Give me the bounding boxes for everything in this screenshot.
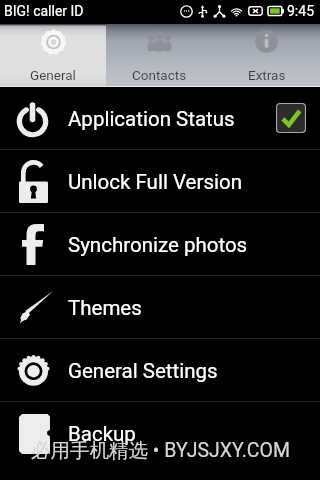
button[interactable]: Contacts	[106, 24, 213, 87]
button[interactable]: Synchronize photos	[0, 213, 320, 275]
staticText: Unlock Full Version	[68, 170, 320, 194]
button[interactable]: Extras	[213, 24, 320, 87]
staticText: Themes	[68, 296, 320, 320]
staticText: Synchronize photos	[68, 233, 320, 257]
button[interactable]: Backup	[0, 402, 320, 464]
staticText: BIG! caller ID	[4, 3, 84, 19]
staticText: Extras	[248, 67, 286, 83]
staticText: General Settings	[68, 359, 320, 383]
staticText: Application Status	[68, 107, 276, 131]
staticText: General	[30, 67, 76, 83]
staticText: 9:45	[287, 3, 314, 19]
button[interactable]: General Settings	[0, 339, 320, 401]
button[interactable]: Application Status	[0, 87, 320, 149]
button[interactable]: Toggle Application Status	[276, 103, 306, 133]
button[interactable]: Unlock Full Version	[0, 150, 320, 212]
staticText: 必用手机精选 • BYJSJXY.COM	[31, 438, 290, 463]
button[interactable]: Themes	[0, 276, 320, 338]
button[interactable]: General	[0, 24, 106, 87]
staticText: Backup	[68, 422, 320, 446]
staticText: Contacts	[132, 67, 187, 83]
